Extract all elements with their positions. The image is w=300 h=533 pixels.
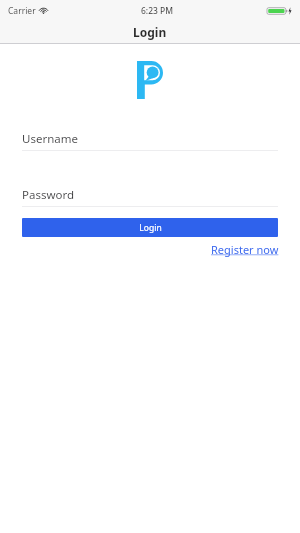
button[interactable]: Password xyxy=(0,184,300,206)
staticText: Register now xyxy=(211,242,279,257)
button[interactable]: Username xyxy=(0,128,300,150)
staticText: Carrier xyxy=(8,5,36,17)
staticText: Username xyxy=(22,131,78,147)
staticText: 6:23 PM xyxy=(141,5,174,17)
staticText: Login xyxy=(139,222,162,234)
other: App logo xyxy=(137,61,163,99)
staticText: Password xyxy=(22,187,75,203)
button[interactable]: Register now xyxy=(211,242,279,257)
button[interactable]: Login xyxy=(22,218,278,237)
staticText: Login xyxy=(133,24,167,40)
